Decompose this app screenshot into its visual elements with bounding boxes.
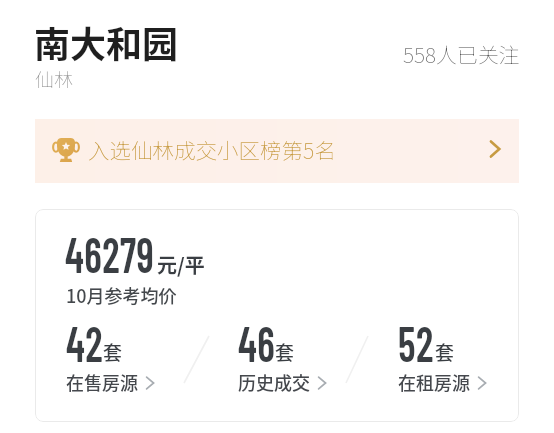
staticText: 南大和园 — [34, 16, 179, 68]
staticText: 元/平 — [157, 250, 205, 279]
staticText: 仙林 — [35, 65, 74, 93]
button[interactable]: 入选仙林成交小区榜第5名 — [35, 119, 519, 183]
button[interactable]: 42 — [66, 312, 186, 390]
staticText: 套 — [275, 338, 295, 366]
staticText: 46279 — [65, 223, 155, 283]
staticText: 42 — [66, 312, 103, 372]
staticText: 52 — [398, 312, 434, 372]
staticText: 10月参考均价 — [66, 282, 177, 308]
staticText: 46 — [238, 312, 275, 372]
button[interactable]: 46 — [238, 312, 358, 390]
button[interactable]: 52 — [398, 312, 518, 390]
staticText: 入选仙林成交小区榜第5名 — [88, 134, 336, 165]
staticText: 套 — [435, 338, 455, 366]
staticText: 在售房源 — [66, 369, 138, 395]
staticText: 558人已关注 — [403, 39, 520, 69]
staticText: 在租房源 — [398, 369, 470, 395]
staticText: 历史成交 — [238, 369, 310, 395]
staticText: 套 — [103, 338, 123, 366]
